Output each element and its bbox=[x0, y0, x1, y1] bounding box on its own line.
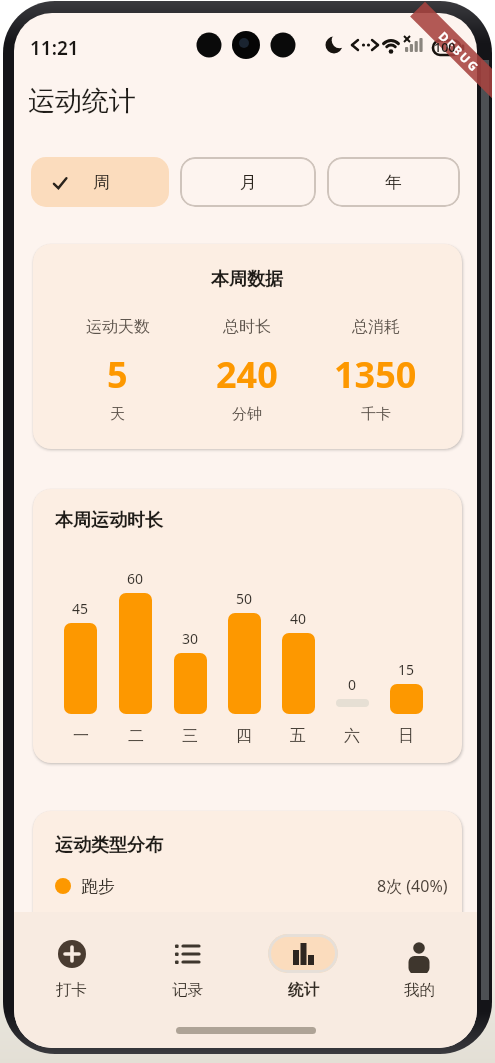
staticText: 运动天数 bbox=[86, 317, 150, 337]
staticText: 运动类型分布 bbox=[55, 834, 163, 857]
staticText: 日 bbox=[398, 726, 414, 746]
staticText: 5 bbox=[107, 350, 128, 399]
staticText: 30 bbox=[182, 629, 199, 648]
staticText: 50 bbox=[236, 589, 253, 608]
staticText: 8次 (40%) bbox=[377, 875, 448, 897]
staticText: 11:21 bbox=[30, 35, 79, 61]
staticText: 三 bbox=[182, 726, 198, 746]
staticText: 千卡 bbox=[361, 405, 391, 424]
button[interactable]: 跑步 bbox=[55, 875, 448, 897]
staticText: 总时长 bbox=[223, 317, 271, 337]
staticText: 月 bbox=[240, 172, 257, 193]
button[interactable]: 打卡 bbox=[14, 934, 129, 1000]
button[interactable]: 月 bbox=[180, 157, 316, 207]
staticText: 240 bbox=[216, 350, 278, 399]
staticText: DEBUG bbox=[436, 28, 484, 76]
staticText: 运动统计 bbox=[28, 84, 136, 118]
staticText: 二 bbox=[128, 726, 144, 746]
staticText: 分钟 bbox=[232, 405, 262, 424]
staticText: 40 bbox=[290, 609, 307, 628]
button[interactable]: 年 bbox=[327, 157, 460, 207]
button[interactable]: 统计 bbox=[245, 934, 361, 1000]
staticText: 60 bbox=[127, 569, 144, 588]
staticText: 一 bbox=[73, 726, 89, 746]
staticText: 周 bbox=[93, 172, 110, 193]
staticText: 五 bbox=[290, 726, 306, 746]
staticText: 15 bbox=[398, 660, 415, 679]
staticText: 0 bbox=[348, 675, 357, 694]
staticText: 本周数据 bbox=[211, 268, 283, 291]
staticText: 统计 bbox=[288, 980, 319, 1000]
staticText: 跑步 bbox=[81, 876, 115, 897]
button[interactable]: 周 bbox=[31, 157, 169, 207]
staticText: 四 bbox=[236, 726, 252, 746]
staticText: 100 bbox=[434, 39, 456, 56]
button[interactable]: 我的 bbox=[361, 934, 477, 1000]
button[interactable]: 记录 bbox=[129, 934, 245, 1000]
staticText: 1350 bbox=[334, 350, 417, 399]
staticText: 45 bbox=[72, 599, 89, 618]
staticText: 天 bbox=[110, 405, 125, 424]
staticText: 记录 bbox=[172, 980, 203, 1000]
staticText: 我的 bbox=[404, 980, 435, 1000]
staticText: 总消耗 bbox=[352, 317, 400, 337]
staticText: 打卡 bbox=[56, 980, 87, 1000]
staticText: 本周运动时长 bbox=[55, 509, 163, 532]
staticText: 年 bbox=[385, 172, 402, 193]
staticText: 六 bbox=[344, 726, 360, 746]
